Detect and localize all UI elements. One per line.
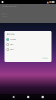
button[interactable]: Show all [4, 37, 51, 42]
staticText: CANCEL [42, 57, 48, 59]
button[interactable]: Home [27, 96, 29, 98]
button[interactable]: Back [12, 96, 15, 98]
button[interactable]: Disc 1 [4, 42, 51, 47]
staticText: Filter type [2, 13, 8, 15]
button[interactable]: Recents [42, 96, 44, 98]
staticText: ▲ [47, 0, 49, 3]
staticText: Filter type [6, 33, 14, 35]
button[interactable]: CANCEL [41, 57, 49, 60]
staticText: Set relative camera info [2, 6, 17, 7]
button[interactable]: Disc 2 [4, 47, 51, 52]
staticText: Show all [10, 39, 15, 40]
staticText: Disc 2 [10, 49, 14, 50]
staticText: Disc 1 [10, 44, 14, 45]
